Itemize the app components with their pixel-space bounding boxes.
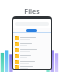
button[interactable]: Filter (26, 29, 37, 32)
button[interactable] (13, 41, 51, 47)
staticText: Files (24, 7, 40, 17)
button[interactable] (13, 65, 51, 69)
button[interactable] (13, 59, 51, 65)
button[interactable] (13, 53, 51, 59)
button[interactable] (13, 35, 51, 41)
button[interactable] (13, 47, 51, 53)
